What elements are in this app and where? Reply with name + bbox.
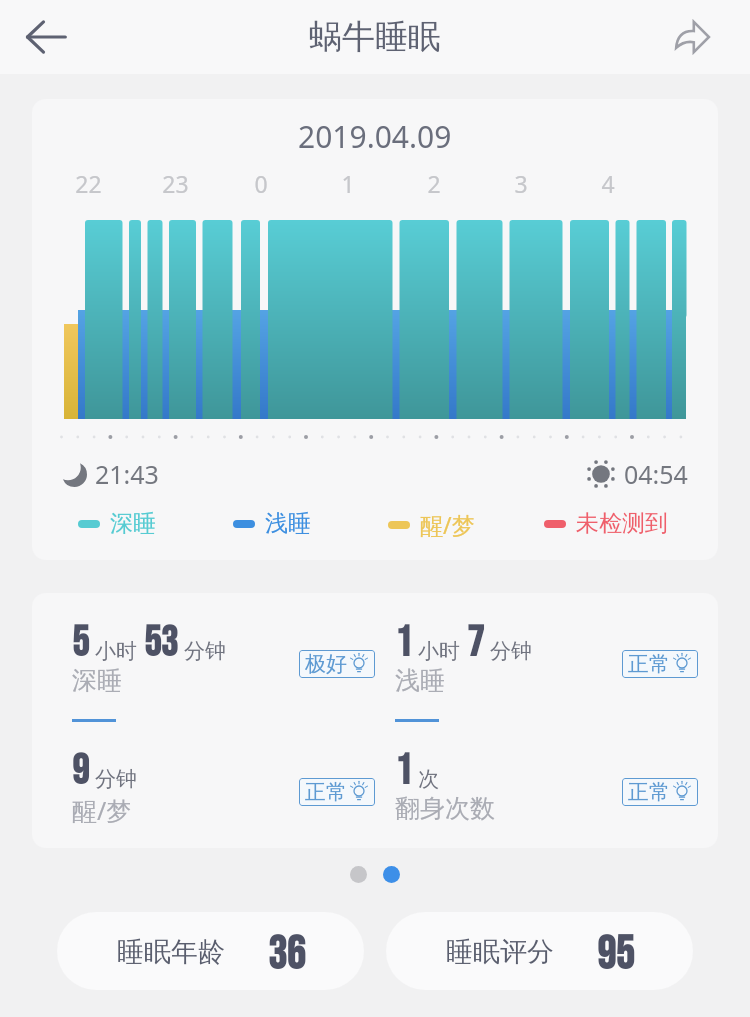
- staticText: 分钟: [184, 638, 226, 664]
- staticText: 正常: [628, 651, 670, 677]
- staticText: 9: [72, 746, 89, 796]
- button[interactable]: Share: [660, 5, 724, 69]
- button[interactable]: Back: [14, 5, 78, 69]
- staticText: 0: [254, 168, 268, 199]
- staticText: 53: [144, 618, 178, 668]
- staticText: 1: [395, 618, 412, 668]
- staticText: 正常: [628, 779, 670, 805]
- staticText: 极好: [305, 651, 347, 677]
- staticText: 1: [395, 746, 412, 796]
- staticText: 深睡: [72, 665, 122, 696]
- button[interactable]: 正常: [622, 778, 698, 806]
- staticText: 2: [427, 168, 441, 199]
- staticText: 分钟: [490, 638, 532, 664]
- staticText: 5: [72, 618, 89, 668]
- staticText: 睡眠年龄: [117, 935, 225, 969]
- staticText: 蜗牛睡眠: [309, 16, 441, 58]
- staticText: 深睡: [110, 509, 156, 538]
- staticText: 4: [601, 168, 615, 199]
- staticText: 21:43: [95, 457, 159, 491]
- staticText: 95: [597, 928, 634, 983]
- staticText: 分钟: [95, 766, 137, 792]
- staticText: 7: [467, 618, 484, 668]
- staticText: 22: [75, 168, 102, 199]
- staticText: 小时: [95, 638, 137, 664]
- button[interactable]: 正常: [622, 650, 698, 678]
- staticText: 醒/梦: [420, 509, 475, 540]
- staticText: 3: [514, 168, 528, 199]
- staticText: 23: [162, 168, 189, 199]
- staticText: 浅睡: [395, 665, 445, 696]
- staticText: 睡眠评分: [446, 935, 554, 969]
- button[interactable]: 正常: [299, 778, 375, 806]
- staticText: 未检测到: [576, 509, 668, 538]
- staticText: 翻身次数: [395, 793, 495, 824]
- staticText: 04:54: [624, 457, 688, 491]
- staticText: 浅睡: [265, 509, 311, 538]
- button[interactable]: 睡眠年龄: [57, 912, 364, 990]
- staticText: 次: [418, 766, 439, 792]
- staticText: 小时: [418, 638, 460, 664]
- button[interactable]: 睡眠评分: [386, 912, 693, 990]
- button[interactable]: 极好: [299, 650, 375, 678]
- staticText: 1: [341, 168, 355, 199]
- staticText: 2019.04.09: [298, 116, 452, 157]
- staticText: 36: [268, 928, 305, 983]
- staticText: 醒/梦: [72, 793, 132, 827]
- staticText: 正常: [305, 779, 347, 805]
